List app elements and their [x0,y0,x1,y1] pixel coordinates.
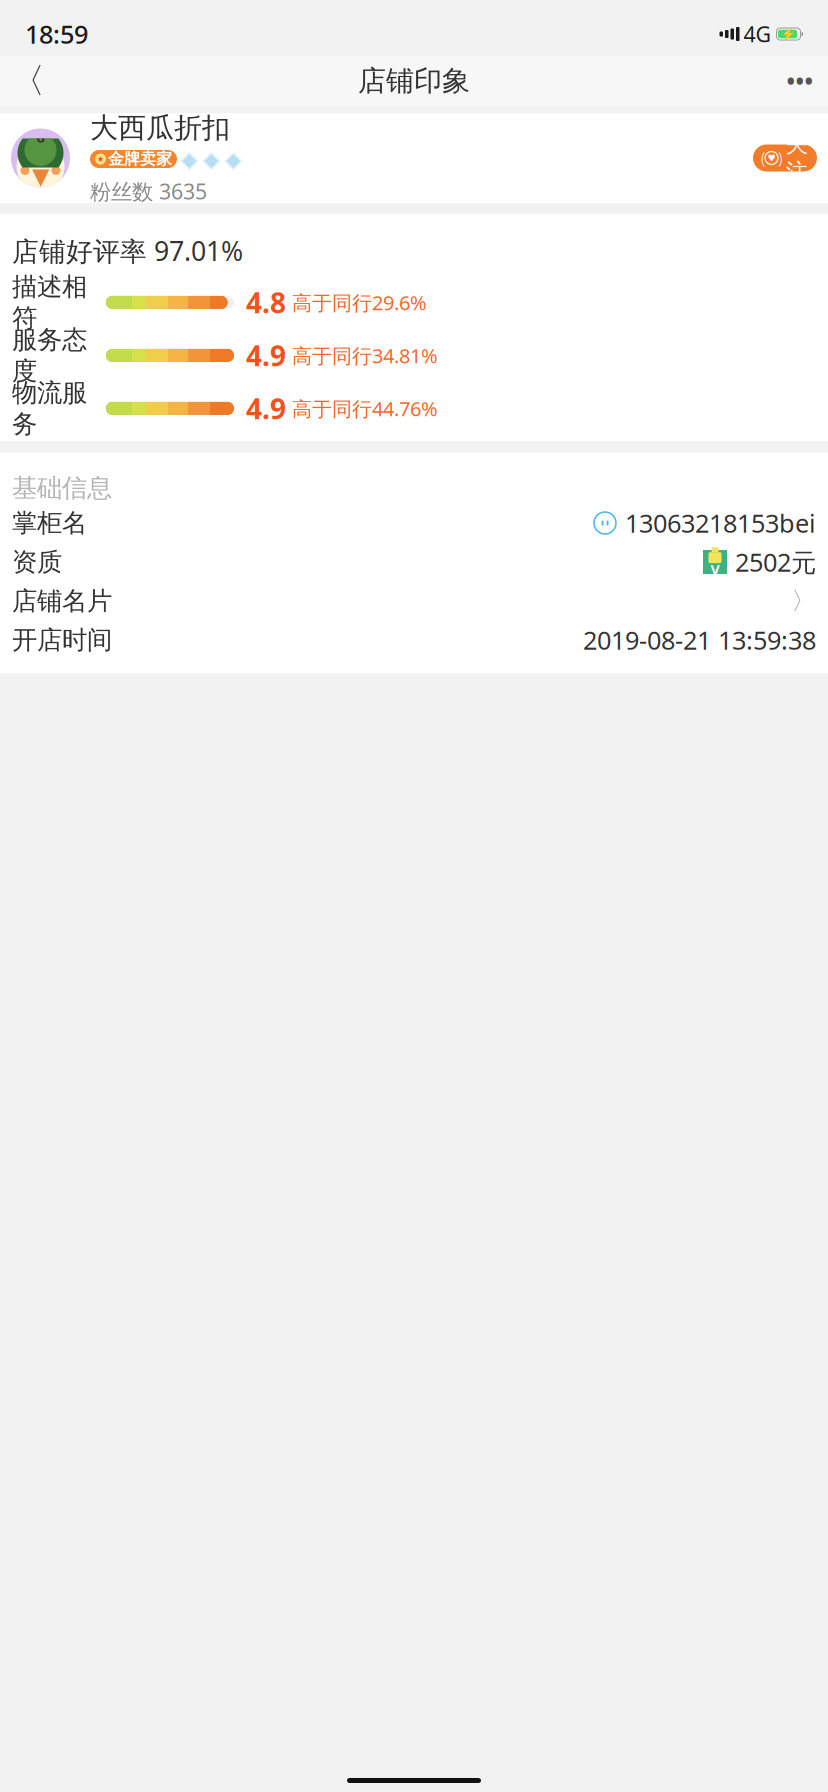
staticText: 高于同行44.76% [292,395,438,422]
staticText: ◆ [224,146,241,172]
staticText: ◆ [202,146,219,172]
staticText: 物流服务 [12,377,87,439]
staticText: 18:59 [25,17,88,51]
staticText: 高于同行34.81% [292,342,438,369]
staticText: ᐯ [710,563,719,577]
staticText: ♥ [767,153,775,163]
staticText: 2019-08-21 13:59:38 [583,623,816,657]
staticText: ••• [786,66,813,96]
staticText: 13063218153bei [625,506,816,540]
staticText: ▼ [32,163,49,189]
staticText: 店铺名片 [12,585,112,617]
button[interactable]: 店铺名片 [0,581,828,620]
staticText: 金牌卖家 [108,149,172,169]
staticText: 4.8 [246,284,286,321]
staticText: 资质 [12,546,62,578]
staticText: ★ [97,154,104,164]
staticText: 〈 [10,60,45,102]
staticText: 2502元 [735,545,816,579]
staticText: 4G [743,20,771,48]
button[interactable]: More options [778,59,822,103]
staticText: ◇ [180,146,197,172]
staticText: 关注 [785,130,808,186]
staticText: ◇ [224,146,241,172]
staticText: 高于同行29.6% [292,289,427,316]
staticText: ◆ [180,146,197,172]
staticText: ◇ [202,146,219,172]
staticText: 店铺好评率 97.01% [12,233,243,268]
staticText: 掌柜名 [12,507,87,539]
staticText: 粉丝数 3635 [90,177,207,205]
staticText: 店铺印象 [358,64,470,98]
staticText: 4.9 [246,390,286,427]
staticText: 开店时间 [12,624,112,656]
staticText: ⚡ [781,27,796,41]
staticText: 服务态度 [12,324,87,386]
button[interactable]: ♥ [753,144,817,171]
staticText: 大西瓜折扣 [90,111,230,145]
button[interactable]: Back [6,59,50,103]
staticText: 〉 [791,585,816,617]
staticText: 6 [36,127,44,147]
staticText: 4.9 [246,337,286,374]
staticText: ✕ [47,150,56,162]
staticText: ) [778,147,782,169]
staticText: ✕ [25,150,34,162]
staticText: ( [761,147,765,169]
staticText: 描述相符 [12,271,87,333]
staticText: 基础信息 [12,472,112,503]
